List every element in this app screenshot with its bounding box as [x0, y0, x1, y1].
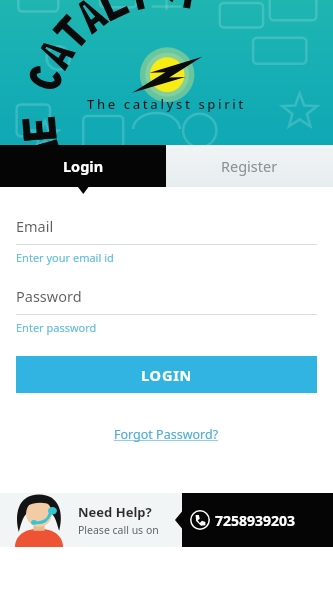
- staticText: LOGIN: [141, 365, 193, 385]
- staticText: Please call us on: [78, 523, 159, 537]
- button[interactable]: LOGIN: [16, 356, 317, 393]
- staticText: Login: [63, 156, 104, 176]
- staticText: Email: [16, 216, 54, 236]
- button[interactable]: Password: [0, 286, 333, 335]
- button[interactable]: Login: [0, 145, 166, 187]
- staticText: 7258939203: [215, 511, 296, 530]
- button[interactable]: Register: [166, 145, 333, 187]
- staticText: Enter password: [16, 320, 97, 335]
- button[interactable]: Need Help?: [0, 493, 182, 547]
- staticText: Enter your email id: [16, 250, 114, 265]
- button[interactable]: Call 7258939203: [182, 493, 333, 547]
- staticText: Password: [16, 286, 82, 306]
- button[interactable]: Email: [0, 216, 333, 265]
- staticText: The catalyst spirit: [87, 95, 246, 113]
- staticText: Need Help?: [78, 503, 152, 521]
- staticText: Register: [221, 156, 278, 176]
- button[interactable]: Forgot Password?: [108, 423, 225, 446]
